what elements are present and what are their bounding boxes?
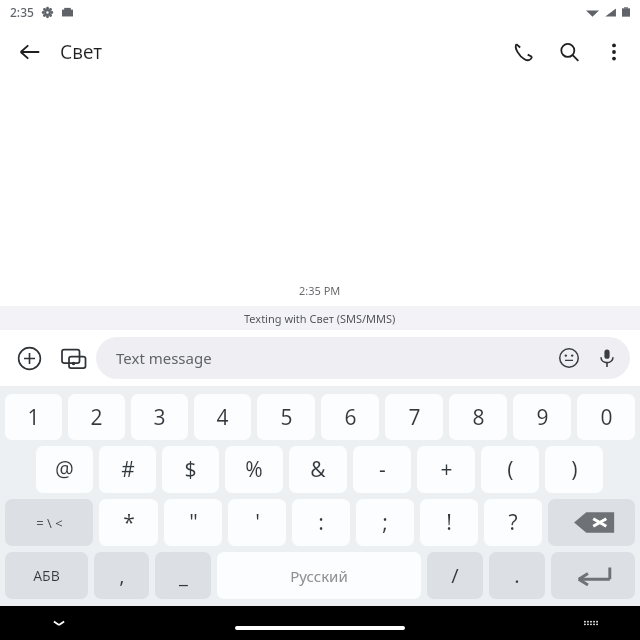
button[interactable]: ' bbox=[228, 499, 286, 546]
button[interactable]: & bbox=[289, 446, 347, 493]
staticText: = \ < bbox=[36, 514, 63, 532]
button[interactable]: + bbox=[417, 446, 475, 493]
staticText: + bbox=[440, 455, 453, 484]
staticText: Русский bbox=[290, 566, 348, 586]
staticText: 4 bbox=[216, 403, 229, 432]
staticText: ? bbox=[508, 508, 518, 537]
button[interactable]: / bbox=[427, 552, 483, 599]
button[interactable]: Русский bbox=[217, 552, 421, 599]
staticText: & bbox=[310, 455, 326, 484]
button[interactable]: ( bbox=[481, 446, 539, 493]
staticText: . bbox=[514, 562, 520, 589]
button[interactable]: Backspace bbox=[548, 499, 635, 546]
button[interactable]: More options bbox=[592, 30, 636, 74]
staticText: 8 bbox=[472, 403, 485, 432]
staticText: Text message bbox=[116, 348, 212, 368]
staticText: 9 bbox=[536, 403, 549, 432]
button[interactable]: - bbox=[353, 446, 411, 493]
staticText: 2 bbox=[90, 403, 103, 432]
button[interactable]: 3 bbox=[131, 394, 188, 440]
staticText: АБВ bbox=[33, 566, 60, 585]
staticText: , bbox=[119, 562, 125, 589]
button[interactable]: , bbox=[94, 552, 149, 599]
button[interactable]: Emoji bbox=[550, 339, 588, 377]
button[interactable]: Hide keyboard bbox=[44, 608, 74, 638]
staticText: 5 bbox=[280, 403, 293, 432]
staticText: Свет bbox=[60, 39, 102, 65]
button[interactable]: Enter bbox=[551, 552, 635, 599]
staticText: ; bbox=[382, 508, 388, 537]
staticText: Texting with Свет (SMS/MMS) bbox=[244, 311, 396, 326]
button[interactable]: Search bbox=[546, 29, 592, 75]
staticText: 1 bbox=[27, 403, 40, 432]
staticText: 3 bbox=[153, 403, 166, 432]
staticText: / bbox=[451, 562, 459, 589]
staticText: @ bbox=[55, 455, 74, 484]
button[interactable]: # bbox=[99, 446, 156, 493]
button[interactable]: 6 bbox=[321, 394, 379, 440]
button[interactable]: @ bbox=[36, 446, 93, 493]
button[interactable]: 8 bbox=[449, 394, 507, 440]
staticText: _ bbox=[179, 562, 188, 589]
staticText: " bbox=[189, 508, 198, 537]
button[interactable]: ; bbox=[356, 499, 414, 546]
staticText: ' bbox=[255, 508, 260, 537]
button[interactable]: 1 bbox=[5, 394, 62, 440]
button[interactable]: 5 bbox=[257, 394, 315, 440]
button[interactable]: Voice input bbox=[588, 339, 626, 377]
button[interactable]: . bbox=[489, 552, 545, 599]
button[interactable]: ! bbox=[420, 499, 478, 546]
button[interactable]: : bbox=[292, 499, 350, 546]
button[interactable]: Back bbox=[8, 30, 52, 74]
staticText: 7 bbox=[408, 403, 421, 432]
staticText: - bbox=[379, 455, 386, 484]
button[interactable]: АБВ bbox=[5, 552, 88, 599]
staticText: 6 bbox=[344, 403, 357, 432]
staticText: # bbox=[121, 455, 135, 484]
button[interactable]: * bbox=[99, 499, 158, 546]
staticText: : bbox=[318, 508, 324, 537]
button[interactable]: Gallery bbox=[50, 335, 96, 381]
button[interactable]: Text message bbox=[96, 337, 630, 379]
button[interactable]: ? bbox=[484, 499, 542, 546]
button[interactable]: ) bbox=[545, 446, 603, 493]
button[interactable]: 7 bbox=[385, 394, 443, 440]
staticText: ( bbox=[507, 455, 514, 484]
button[interactable]: 0 bbox=[577, 394, 635, 440]
staticText: 2:35 bbox=[10, 4, 34, 20]
staticText: 0 bbox=[600, 403, 613, 432]
button[interactable]: 4 bbox=[194, 394, 251, 440]
button[interactable]: Call bbox=[500, 29, 546, 75]
button[interactable]: Add attachment bbox=[8, 337, 50, 379]
button[interactable]: _ bbox=[155, 552, 211, 599]
staticText: ! bbox=[446, 508, 452, 537]
staticText: * bbox=[123, 508, 135, 537]
button[interactable]: $ bbox=[162, 446, 219, 493]
button[interactable]: = \ < bbox=[5, 499, 93, 546]
button[interactable]: 2 bbox=[68, 394, 125, 440]
staticText: % bbox=[245, 455, 263, 484]
button[interactable]: Switch keyboard bbox=[576, 608, 606, 638]
staticText: ) bbox=[571, 455, 578, 484]
button[interactable]: 9 bbox=[513, 394, 571, 440]
staticText: 2:35 PM bbox=[299, 283, 341, 298]
button[interactable]: % bbox=[225, 446, 283, 493]
staticText: $ bbox=[184, 455, 197, 484]
button[interactable]: " bbox=[164, 499, 222, 546]
